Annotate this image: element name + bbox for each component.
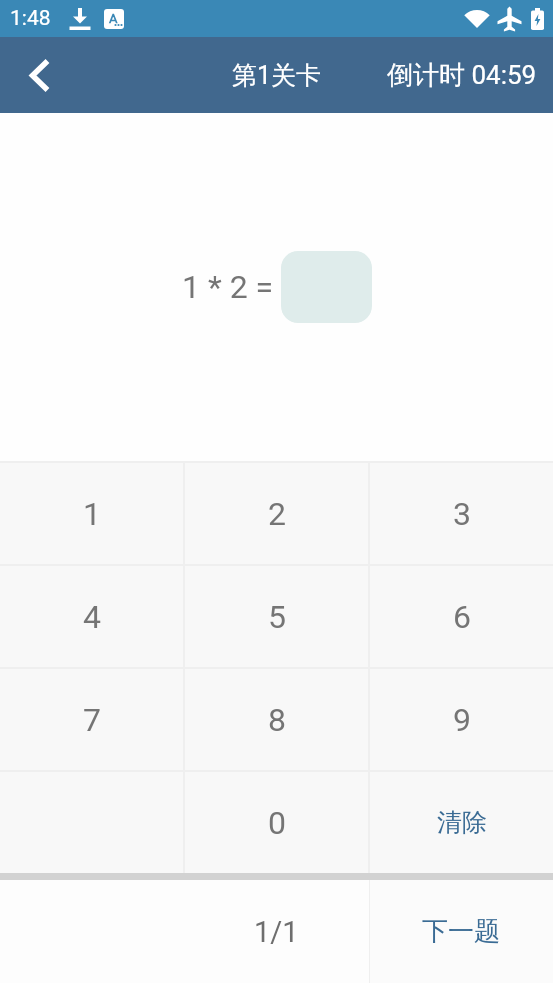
button[interactable]: 清除 — [370, 772, 553, 873]
button[interactable] — [281, 251, 372, 323]
staticText: 5 — [268, 598, 286, 636]
button[interactable]: 4 — [0, 566, 183, 667]
staticText: 6 — [453, 598, 471, 636]
staticText: 2 — [268, 495, 286, 533]
staticText: 清除 — [437, 807, 487, 838]
button[interactable] — [16, 52, 62, 98]
button[interactable]: 3 — [370, 463, 553, 564]
button[interactable]: 7 — [0, 669, 183, 770]
button[interactable]: 5 — [185, 566, 368, 667]
staticText: 1 * 2 = — [182, 268, 274, 306]
staticText: 下一题 — [422, 915, 500, 948]
staticText: 4 — [83, 598, 101, 636]
button[interactable]: 下一题 — [369, 880, 553, 983]
staticText: 1 — [83, 495, 101, 533]
staticText: 1/1 — [254, 915, 299, 949]
staticText: 8 — [268, 701, 286, 739]
staticText: 1:48 — [10, 6, 51, 31]
button[interactable]: 1 — [0, 463, 183, 564]
staticText: 倒计时 04:59 — [387, 59, 537, 92]
button[interactable]: 8 — [185, 669, 368, 770]
button[interactable]: 2 — [185, 463, 368, 564]
staticText: 9 — [453, 701, 471, 739]
staticText: 0 — [268, 804, 286, 842]
staticText: A — [109, 11, 118, 26]
staticText: 第1关卡 — [232, 60, 322, 91]
staticText: 3 — [453, 495, 471, 533]
button[interactable]: 0 — [185, 772, 368, 873]
button[interactable]: 6 — [370, 566, 553, 667]
button[interactable]: 9 — [370, 669, 553, 770]
staticText: 7 — [83, 701, 101, 739]
